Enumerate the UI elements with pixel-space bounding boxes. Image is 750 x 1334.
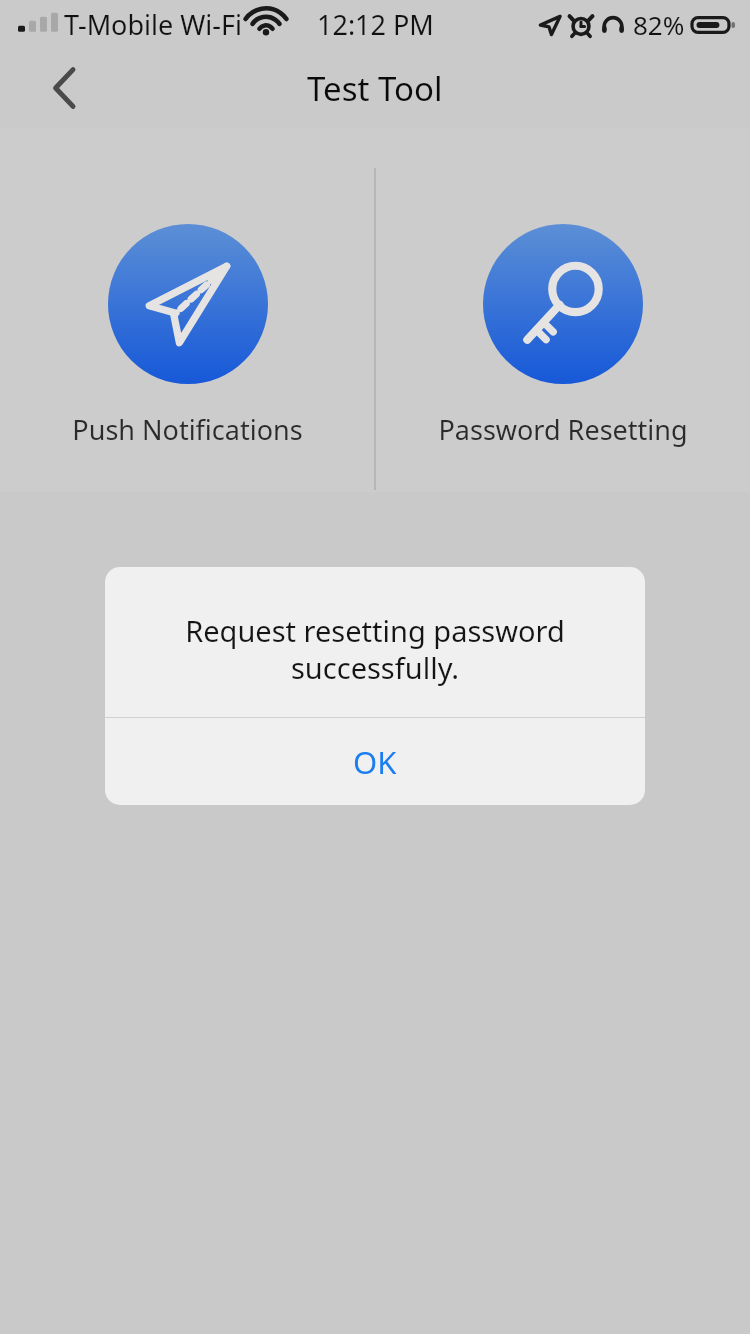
staticText: Push Notifications bbox=[72, 411, 303, 448]
staticText: OK bbox=[353, 741, 397, 783]
button[interactable]: Password Resetting bbox=[375, 128, 750, 492]
staticText: T-Mobile Wi-Fi bbox=[64, 6, 242, 43]
staticText: Password Resetting bbox=[438, 411, 688, 448]
staticText: Request resetting password successfully. bbox=[139, 611, 611, 688]
button[interactable]: Push Notifications bbox=[0, 128, 375, 492]
button[interactable]: Back bbox=[22, 52, 106, 124]
staticText: Test Tool bbox=[307, 66, 443, 111]
button[interactable]: OK bbox=[105, 718, 645, 805]
staticText: 12:12 PM bbox=[317, 6, 434, 43]
staticText: 82% bbox=[633, 7, 685, 42]
